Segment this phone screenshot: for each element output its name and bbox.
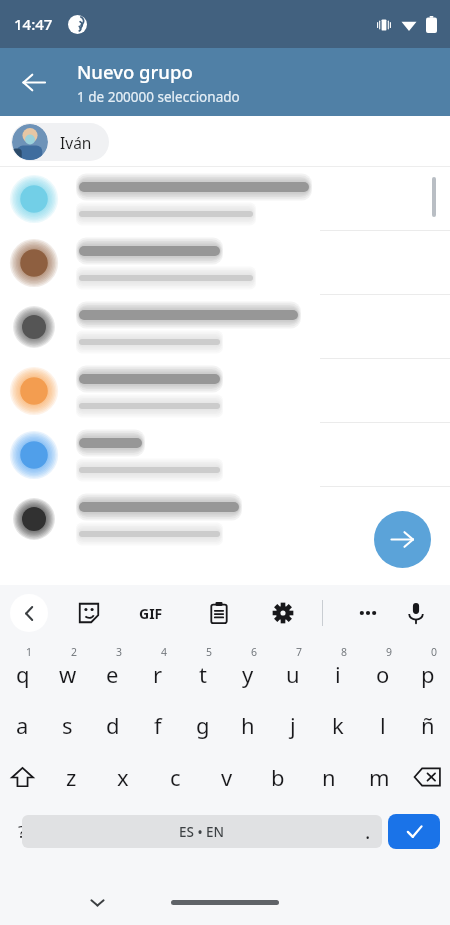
- staticText: y: [242, 659, 254, 689]
- staticText: i: [335, 659, 341, 689]
- button[interactable]: v: [201, 751, 252, 803]
- staticText: h: [241, 710, 255, 740]
- button[interactable]: l: [360, 699, 405, 751]
- staticText: b: [271, 762, 285, 792]
- staticText: t: [199, 659, 207, 689]
- staticText: d: [106, 710, 120, 740]
- button[interactable]: 7: [270, 641, 315, 699]
- staticText: k: [332, 710, 344, 740]
- staticText: z: [66, 762, 77, 792]
- staticText: 2: [71, 645, 78, 659]
- button[interactable]: Atrás: [7, 56, 59, 108]
- staticText: q: [16, 659, 30, 689]
- button[interactable]: Mayúsculas: [0, 751, 45, 803]
- button[interactable]: a: [0, 699, 45, 751]
- button[interactable]: Ajustes: [260, 590, 306, 636]
- button[interactable]: m: [354, 751, 405, 803]
- staticText: .: [365, 818, 371, 845]
- staticText: Iván: [60, 132, 92, 153]
- button[interactable]: [0, 295, 450, 359]
- button[interactable]: n: [303, 751, 354, 803]
- staticText: 5: [206, 645, 213, 659]
- staticText: v: [221, 762, 233, 792]
- staticText: 8: [341, 645, 348, 659]
- staticText: 1: [26, 645, 33, 659]
- staticText: e: [106, 659, 119, 689]
- staticText: a: [16, 710, 29, 740]
- button[interactable]: [0, 423, 450, 487]
- staticText: c: [170, 762, 181, 792]
- button[interactable]: 6: [225, 641, 270, 699]
- button[interactable]: ?123: [5, 803, 67, 859]
- staticText: s: [62, 710, 73, 740]
- staticText: 0: [431, 645, 438, 659]
- staticText: l: [380, 710, 386, 740]
- staticText: Nuevo grupo: [77, 59, 193, 84]
- staticText: 7: [296, 645, 303, 659]
- button[interactable]: d: [90, 699, 135, 751]
- button[interactable]: z: [45, 751, 97, 803]
- button[interactable]: b: [252, 751, 303, 803]
- button[interactable]: Stickers: [66, 590, 112, 636]
- button[interactable]: [0, 359, 450, 423]
- button[interactable]: s: [45, 699, 90, 751]
- button[interactable]: [0, 167, 450, 231]
- button[interactable]: Entrada de voz: [393, 590, 439, 636]
- staticText: p: [421, 659, 435, 689]
- staticText: j: [290, 710, 296, 740]
- staticText: 4: [161, 645, 168, 659]
- button[interactable]: [0, 231, 450, 295]
- button[interactable]: 9: [360, 641, 405, 699]
- button[interactable]: c: [149, 751, 201, 803]
- button[interactable]: 4: [135, 641, 180, 699]
- button[interactable]: Iván: [11, 123, 109, 161]
- staticText: 6: [251, 645, 258, 659]
- staticText: 1 de 200000 seleccionado: [77, 88, 240, 106]
- button[interactable]: Portapapeles: [196, 590, 242, 636]
- button[interactable]: k: [315, 699, 360, 751]
- button[interactable]: f: [135, 699, 180, 751]
- button[interactable]: Más opciones: [345, 590, 391, 636]
- button[interactable]: Ocultar teclado: [76, 881, 118, 923]
- staticText: m: [369, 762, 390, 792]
- staticText: ES • EN: [179, 823, 225, 841]
- staticText: u: [286, 659, 300, 689]
- button[interactable]: j: [270, 699, 315, 751]
- staticText: o: [376, 659, 390, 689]
- staticText: f: [154, 710, 162, 740]
- staticText: w: [59, 659, 77, 689]
- button[interactable]: Cambiar idioma: [118, 807, 166, 855]
- staticText: GIF: [139, 604, 163, 623]
- staticText: ñ: [421, 710, 435, 740]
- button[interactable]: x: [97, 751, 149, 803]
- button[interactable]: Siguiente: [374, 511, 431, 568]
- button[interactable]: GIF: [128, 590, 174, 636]
- staticText: ?123: [18, 820, 55, 843]
- staticText: 9: [386, 645, 393, 659]
- button[interactable]: 5: [180, 641, 225, 699]
- button[interactable]: g: [180, 699, 225, 751]
- button[interactable]: ñ: [405, 699, 450, 751]
- staticText: r: [153, 659, 163, 689]
- staticText: 3: [116, 645, 123, 659]
- button[interactable]: 3: [90, 641, 135, 699]
- button[interactable]: ES • EN: [22, 815, 382, 848]
- button[interactable]: 8: [315, 641, 360, 699]
- button[interactable]: h: [225, 699, 270, 751]
- button[interactable]: [0, 487, 450, 551]
- button[interactable]: .: [352, 815, 384, 847]
- button[interactable]: Intro: [388, 814, 440, 849]
- button[interactable]: ,: [72, 807, 120, 855]
- staticText: 14:47: [14, 14, 53, 34]
- button[interactable]: 2: [45, 641, 90, 699]
- staticText: x: [117, 762, 129, 792]
- staticText: n: [322, 762, 336, 792]
- button[interactable]: 1: [0, 641, 45, 699]
- button[interactable]: 0: [405, 641, 450, 699]
- button[interactable]: Anterior: [10, 594, 48, 632]
- staticText: g: [196, 710, 210, 740]
- button[interactable]: Borrar: [405, 751, 450, 803]
